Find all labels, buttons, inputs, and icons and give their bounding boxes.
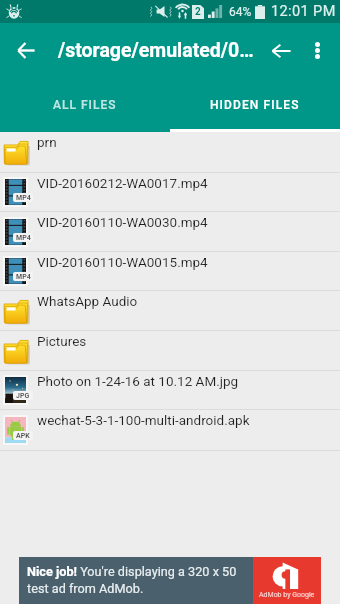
staticText: prn	[37, 134, 57, 150]
staticText: ALL FILES	[53, 98, 117, 112]
button[interactable]: MP4	[0, 212, 340, 252]
staticText: VID-20160110-WA0030.mp4	[37, 214, 208, 230]
button[interactable]: Pictures	[0, 331, 340, 371]
staticText: You're displaying a 320 x 50	[77, 564, 237, 579]
button[interactable]: APK	[0, 410, 340, 451]
staticText: VID-20160110-WA0015.mp4	[37, 254, 208, 270]
button[interactable]: WhatsApp Audio	[0, 291, 340, 331]
button[interactable]: ALL FILES	[0, 78, 170, 132]
button[interactable]: More options	[300, 23, 337, 78]
staticText: 12:01 PM	[271, 3, 336, 20]
staticText: MP4	[16, 194, 31, 202]
button[interactable]: HIDDEN FILES	[170, 78, 340, 132]
button[interactable]: MP4	[0, 173, 340, 212]
staticText: 64%	[229, 5, 252, 19]
button[interactable]: Back	[0, 23, 53, 78]
staticText: AdMob by Google	[259, 591, 315, 599]
staticText: JPG	[16, 392, 30, 400]
staticText: Photo on 1-24-16 at 10.12 AM.jpg	[37, 373, 239, 389]
staticText: wechat-5-3-1-100-multi-android.apk	[37, 412, 250, 428]
staticText: Pictures	[37, 333, 87, 349]
button[interactable]: MP4	[0, 252, 340, 291]
staticText: test ad from AdMob.	[27, 581, 144, 596]
staticText: HIDDEN FILES	[210, 98, 300, 112]
staticText: APK	[16, 432, 30, 440]
button[interactable]: JPG	[0, 371, 340, 410]
button[interactable]: Nice job!	[19, 557, 321, 604]
staticText: MP4	[16, 273, 31, 281]
staticText: WhatsApp Audio	[37, 293, 138, 309]
staticText: MP4	[16, 234, 31, 242]
button[interactable]: prn	[0, 132, 340, 173]
staticText: 2	[195, 6, 201, 18]
staticText: VID-20160212-WA0017.mp4	[37, 175, 208, 191]
button[interactable]: Up one level	[260, 23, 300, 78]
staticText: /storage/emulated/0…	[58, 39, 254, 62]
staticText: Nice job!	[27, 564, 77, 579]
